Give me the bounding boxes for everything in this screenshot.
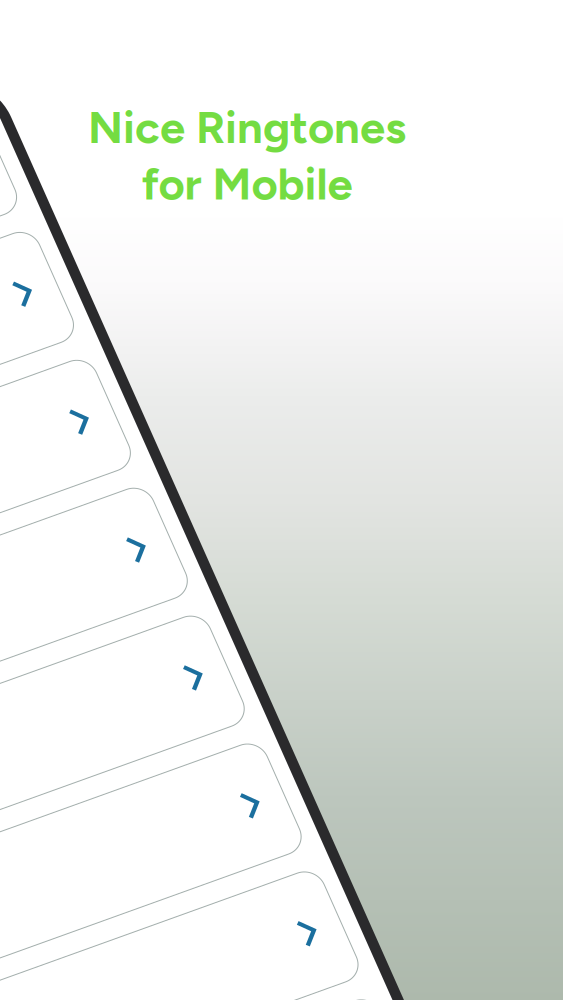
staticText: for Mobile bbox=[141, 156, 352, 211]
button[interactable] bbox=[10, 448, 419, 567]
staticText: Nice Ringtones bbox=[88, 100, 406, 154]
button[interactable] bbox=[10, 728, 419, 847]
button[interactable] bbox=[10, 588, 419, 707]
button[interactable] bbox=[10, 308, 419, 427]
button[interactable] bbox=[10, 28, 419, 147]
button[interactable] bbox=[10, 868, 419, 987]
button[interactable] bbox=[10, 168, 419, 287]
